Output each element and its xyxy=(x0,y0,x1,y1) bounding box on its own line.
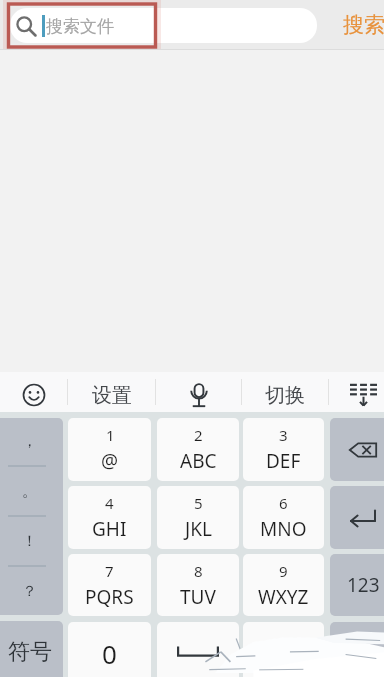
button[interactable]: 3 xyxy=(243,418,324,481)
button[interactable]: 7 xyxy=(68,554,151,616)
staticText: 8 xyxy=(194,561,203,581)
staticText: 5 xyxy=(194,493,203,513)
button[interactable]: 8 xyxy=(157,554,239,616)
other: Emoji xyxy=(22,383,46,407)
button[interactable]: 5 xyxy=(157,486,239,549)
staticText: 7 xyxy=(105,561,114,581)
staticText: ！ xyxy=(22,532,37,551)
button[interactable] xyxy=(330,622,384,677)
staticText: TUV xyxy=(180,584,216,610)
button[interactable]: 123 xyxy=(330,554,384,616)
button[interactable] xyxy=(243,622,324,677)
staticText: JKL xyxy=(185,516,212,542)
staticText: DEF xyxy=(266,448,301,474)
staticText: 切换 xyxy=(265,383,305,408)
button[interactable]: 6 xyxy=(243,486,324,549)
staticText: 4 xyxy=(105,493,114,513)
button[interactable]: 9 xyxy=(243,554,324,616)
button[interactable]: Hide keyboard xyxy=(329,372,384,412)
staticText: @ xyxy=(101,448,119,474)
button[interactable]: 设置 xyxy=(68,372,155,412)
button[interactable]: 1 xyxy=(68,418,151,481)
other: Voice input xyxy=(186,382,212,408)
staticText: 设置 xyxy=(92,383,132,408)
staticText: 0 xyxy=(102,636,117,671)
staticText: 6 xyxy=(279,493,288,513)
staticText: ABC xyxy=(180,448,217,474)
button[interactable]: 2 xyxy=(157,418,239,481)
button[interactable]: 切换 xyxy=(242,372,328,412)
button[interactable]: ， xyxy=(0,418,63,615)
button[interactable]: 搜索文件 xyxy=(10,8,317,43)
button[interactable]: 0 xyxy=(68,622,151,677)
button[interactable]: Voice input xyxy=(156,372,241,412)
staticText: ， xyxy=(22,432,37,451)
staticText: 。 xyxy=(22,482,37,501)
button[interactable]: 搜索 xyxy=(343,0,384,50)
staticText: 123 xyxy=(347,572,380,598)
button[interactable]: Space xyxy=(157,622,239,677)
button[interactable]: 符号 xyxy=(0,621,63,677)
button[interactable]: Backspace xyxy=(330,418,384,481)
staticText: MNO xyxy=(260,516,307,542)
staticText: 3 xyxy=(279,425,288,445)
button[interactable]: Emoji xyxy=(0,372,67,412)
staticText: 符号 xyxy=(8,638,52,666)
staticText: 搜索 xyxy=(343,12,384,38)
button[interactable]: Enter xyxy=(330,486,384,549)
staticText: WXYZ xyxy=(258,584,309,610)
staticText: 1 xyxy=(106,425,115,445)
other: Hide keyboard xyxy=(350,380,377,407)
staticText: ？ xyxy=(22,582,37,601)
button[interactable]: 4 xyxy=(68,486,151,549)
staticText: GHI xyxy=(92,516,127,542)
staticText: 搜索文件 xyxy=(46,16,114,37)
staticText: 9 xyxy=(279,561,288,581)
staticText: PQRS xyxy=(85,584,134,610)
staticText: 2 xyxy=(194,425,203,445)
